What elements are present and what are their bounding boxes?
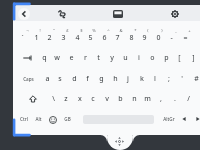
staticText: 2 xyxy=(47,33,52,43)
button[interactable]: Glide typing xyxy=(58,10,66,18)
button[interactable] xyxy=(186,47,200,67)
staticText: . xyxy=(174,94,176,104)
button[interactable] xyxy=(14,109,34,129)
button[interactable] xyxy=(81,68,95,88)
button[interactable]: Tab xyxy=(14,47,37,67)
button[interactable] xyxy=(91,47,105,67)
staticText: + xyxy=(188,28,191,34)
button[interactable]: Shift xyxy=(14,88,46,108)
staticText: 5 xyxy=(88,33,93,43)
button[interactable] xyxy=(29,27,43,47)
button[interactable] xyxy=(60,109,75,129)
staticText: r xyxy=(84,53,87,63)
button[interactable] xyxy=(159,47,173,67)
staticText: y xyxy=(110,53,114,63)
staticText: v xyxy=(105,94,109,104)
button[interactable] xyxy=(56,27,70,47)
button[interactable] xyxy=(51,47,65,67)
button[interactable] xyxy=(94,68,108,88)
staticText: d xyxy=(72,74,77,84)
staticText: GB xyxy=(64,116,71,122)
staticText: & xyxy=(119,28,123,34)
staticText: AltGr xyxy=(163,116,175,122)
staticText: ' xyxy=(181,74,183,84)
staticText: p xyxy=(164,53,169,63)
button[interactable] xyxy=(16,27,30,47)
button[interactable] xyxy=(176,68,190,88)
button[interactable] xyxy=(110,27,124,47)
button[interactable] xyxy=(137,27,151,47)
button[interactable] xyxy=(73,88,87,108)
button[interactable] xyxy=(148,68,162,88)
staticText: $ xyxy=(80,28,83,34)
staticText: - xyxy=(170,33,173,43)
button[interactable]: Back xyxy=(18,8,30,20)
button[interactable] xyxy=(178,27,192,47)
staticText: m xyxy=(144,94,151,104)
button[interactable]: Move keyboard xyxy=(115,137,124,146)
button[interactable]: Settings xyxy=(171,10,179,18)
staticText: ; xyxy=(168,74,170,84)
button[interactable] xyxy=(70,27,84,47)
button[interactable] xyxy=(121,68,135,88)
button[interactable] xyxy=(114,88,128,108)
staticText: c xyxy=(91,94,95,104)
button[interactable] xyxy=(59,88,73,108)
staticText: t xyxy=(97,53,100,63)
button[interactable] xyxy=(127,88,141,108)
button[interactable] xyxy=(64,47,78,67)
staticText: £ xyxy=(66,28,69,34)
button[interactable] xyxy=(14,68,40,88)
staticText: # xyxy=(194,74,199,84)
staticText: ¬ xyxy=(26,28,29,34)
button[interactable] xyxy=(189,68,200,88)
button[interactable] xyxy=(105,47,119,67)
button[interactable] xyxy=(118,47,132,67)
button[interactable] xyxy=(32,109,46,129)
staticText: 9 xyxy=(142,33,147,43)
button[interactable] xyxy=(108,68,122,88)
button[interactable] xyxy=(37,47,51,67)
staticText: b xyxy=(118,94,123,104)
button[interactable]: Right xyxy=(192,109,200,129)
button[interactable] xyxy=(86,88,100,108)
staticText: ( xyxy=(147,28,149,34)
button[interactable] xyxy=(78,47,92,67)
staticText: i xyxy=(138,53,140,63)
staticText: \ xyxy=(52,94,55,104)
staticText: 3 xyxy=(61,33,66,43)
button[interactable] xyxy=(160,109,179,129)
button[interactable] xyxy=(124,27,138,47)
button[interactable] xyxy=(135,68,149,88)
button[interactable] xyxy=(162,68,176,88)
staticText: o xyxy=(150,53,155,63)
button[interactable] xyxy=(154,88,168,108)
button[interactable] xyxy=(165,27,179,47)
staticText: 1 xyxy=(34,33,39,43)
button[interactable]: Left xyxy=(180,109,191,129)
button[interactable] xyxy=(181,88,195,108)
staticText: * xyxy=(134,28,137,34)
staticText: 7 xyxy=(115,33,120,43)
staticText: 0 xyxy=(156,33,161,43)
button[interactable] xyxy=(67,68,81,88)
staticText: ^ xyxy=(107,28,110,34)
button[interactable] xyxy=(168,88,182,108)
button[interactable] xyxy=(40,68,54,88)
button[interactable] xyxy=(173,47,187,67)
button[interactable] xyxy=(83,27,97,47)
staticText: ! xyxy=(39,28,41,34)
button[interactable] xyxy=(151,27,165,47)
button[interactable] xyxy=(146,47,160,67)
button[interactable] xyxy=(141,88,155,108)
button[interactable] xyxy=(97,27,111,47)
button[interactable] xyxy=(43,27,57,47)
button[interactable] xyxy=(46,88,60,108)
staticText: f xyxy=(86,74,89,84)
button[interactable]: Keyboard layout xyxy=(113,10,123,18)
button[interactable] xyxy=(100,88,114,108)
button[interactable]: Emoji xyxy=(46,109,59,129)
button[interactable] xyxy=(132,47,146,67)
button[interactable] xyxy=(54,68,68,88)
